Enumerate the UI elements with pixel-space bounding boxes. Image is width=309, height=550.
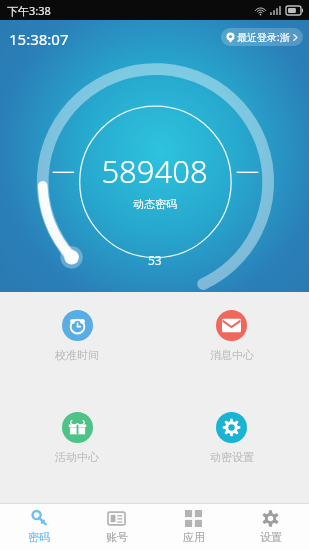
staticText: 最近登录:浙 bbox=[237, 30, 290, 44]
button[interactable]: 活动中心 bbox=[0, 412, 154, 464]
button[interactable]: 校准时间 bbox=[0, 310, 154, 362]
staticText: 15:38:07 bbox=[9, 29, 69, 49]
button[interactable]: 消息中心 bbox=[154, 310, 309, 362]
button[interactable]: 动密设置 bbox=[154, 412, 309, 464]
button[interactable]: 密码 bbox=[0, 504, 78, 550]
staticText: 校准时间 bbox=[55, 348, 99, 362]
staticText: 账号 bbox=[106, 530, 128, 544]
staticText: 53 bbox=[148, 252, 162, 268]
staticText: 应用 bbox=[183, 530, 205, 544]
button[interactable]: 账号 bbox=[78, 504, 155, 550]
staticText: 消息中心 bbox=[210, 348, 254, 362]
staticText: 下午3:38 bbox=[7, 3, 51, 18]
staticText: 589408 bbox=[101, 150, 208, 192]
staticText: 动态密码 bbox=[133, 197, 177, 211]
button[interactable]: 应用 bbox=[155, 504, 232, 550]
staticText: 密码 bbox=[28, 530, 50, 544]
staticText: 设置 bbox=[260, 530, 282, 544]
button[interactable]: 设置 bbox=[232, 504, 309, 550]
staticText: 活动中心 bbox=[55, 450, 99, 464]
button[interactable]: 最近登录:浙 bbox=[221, 28, 303, 46]
staticText: 动密设置 bbox=[210, 450, 254, 464]
